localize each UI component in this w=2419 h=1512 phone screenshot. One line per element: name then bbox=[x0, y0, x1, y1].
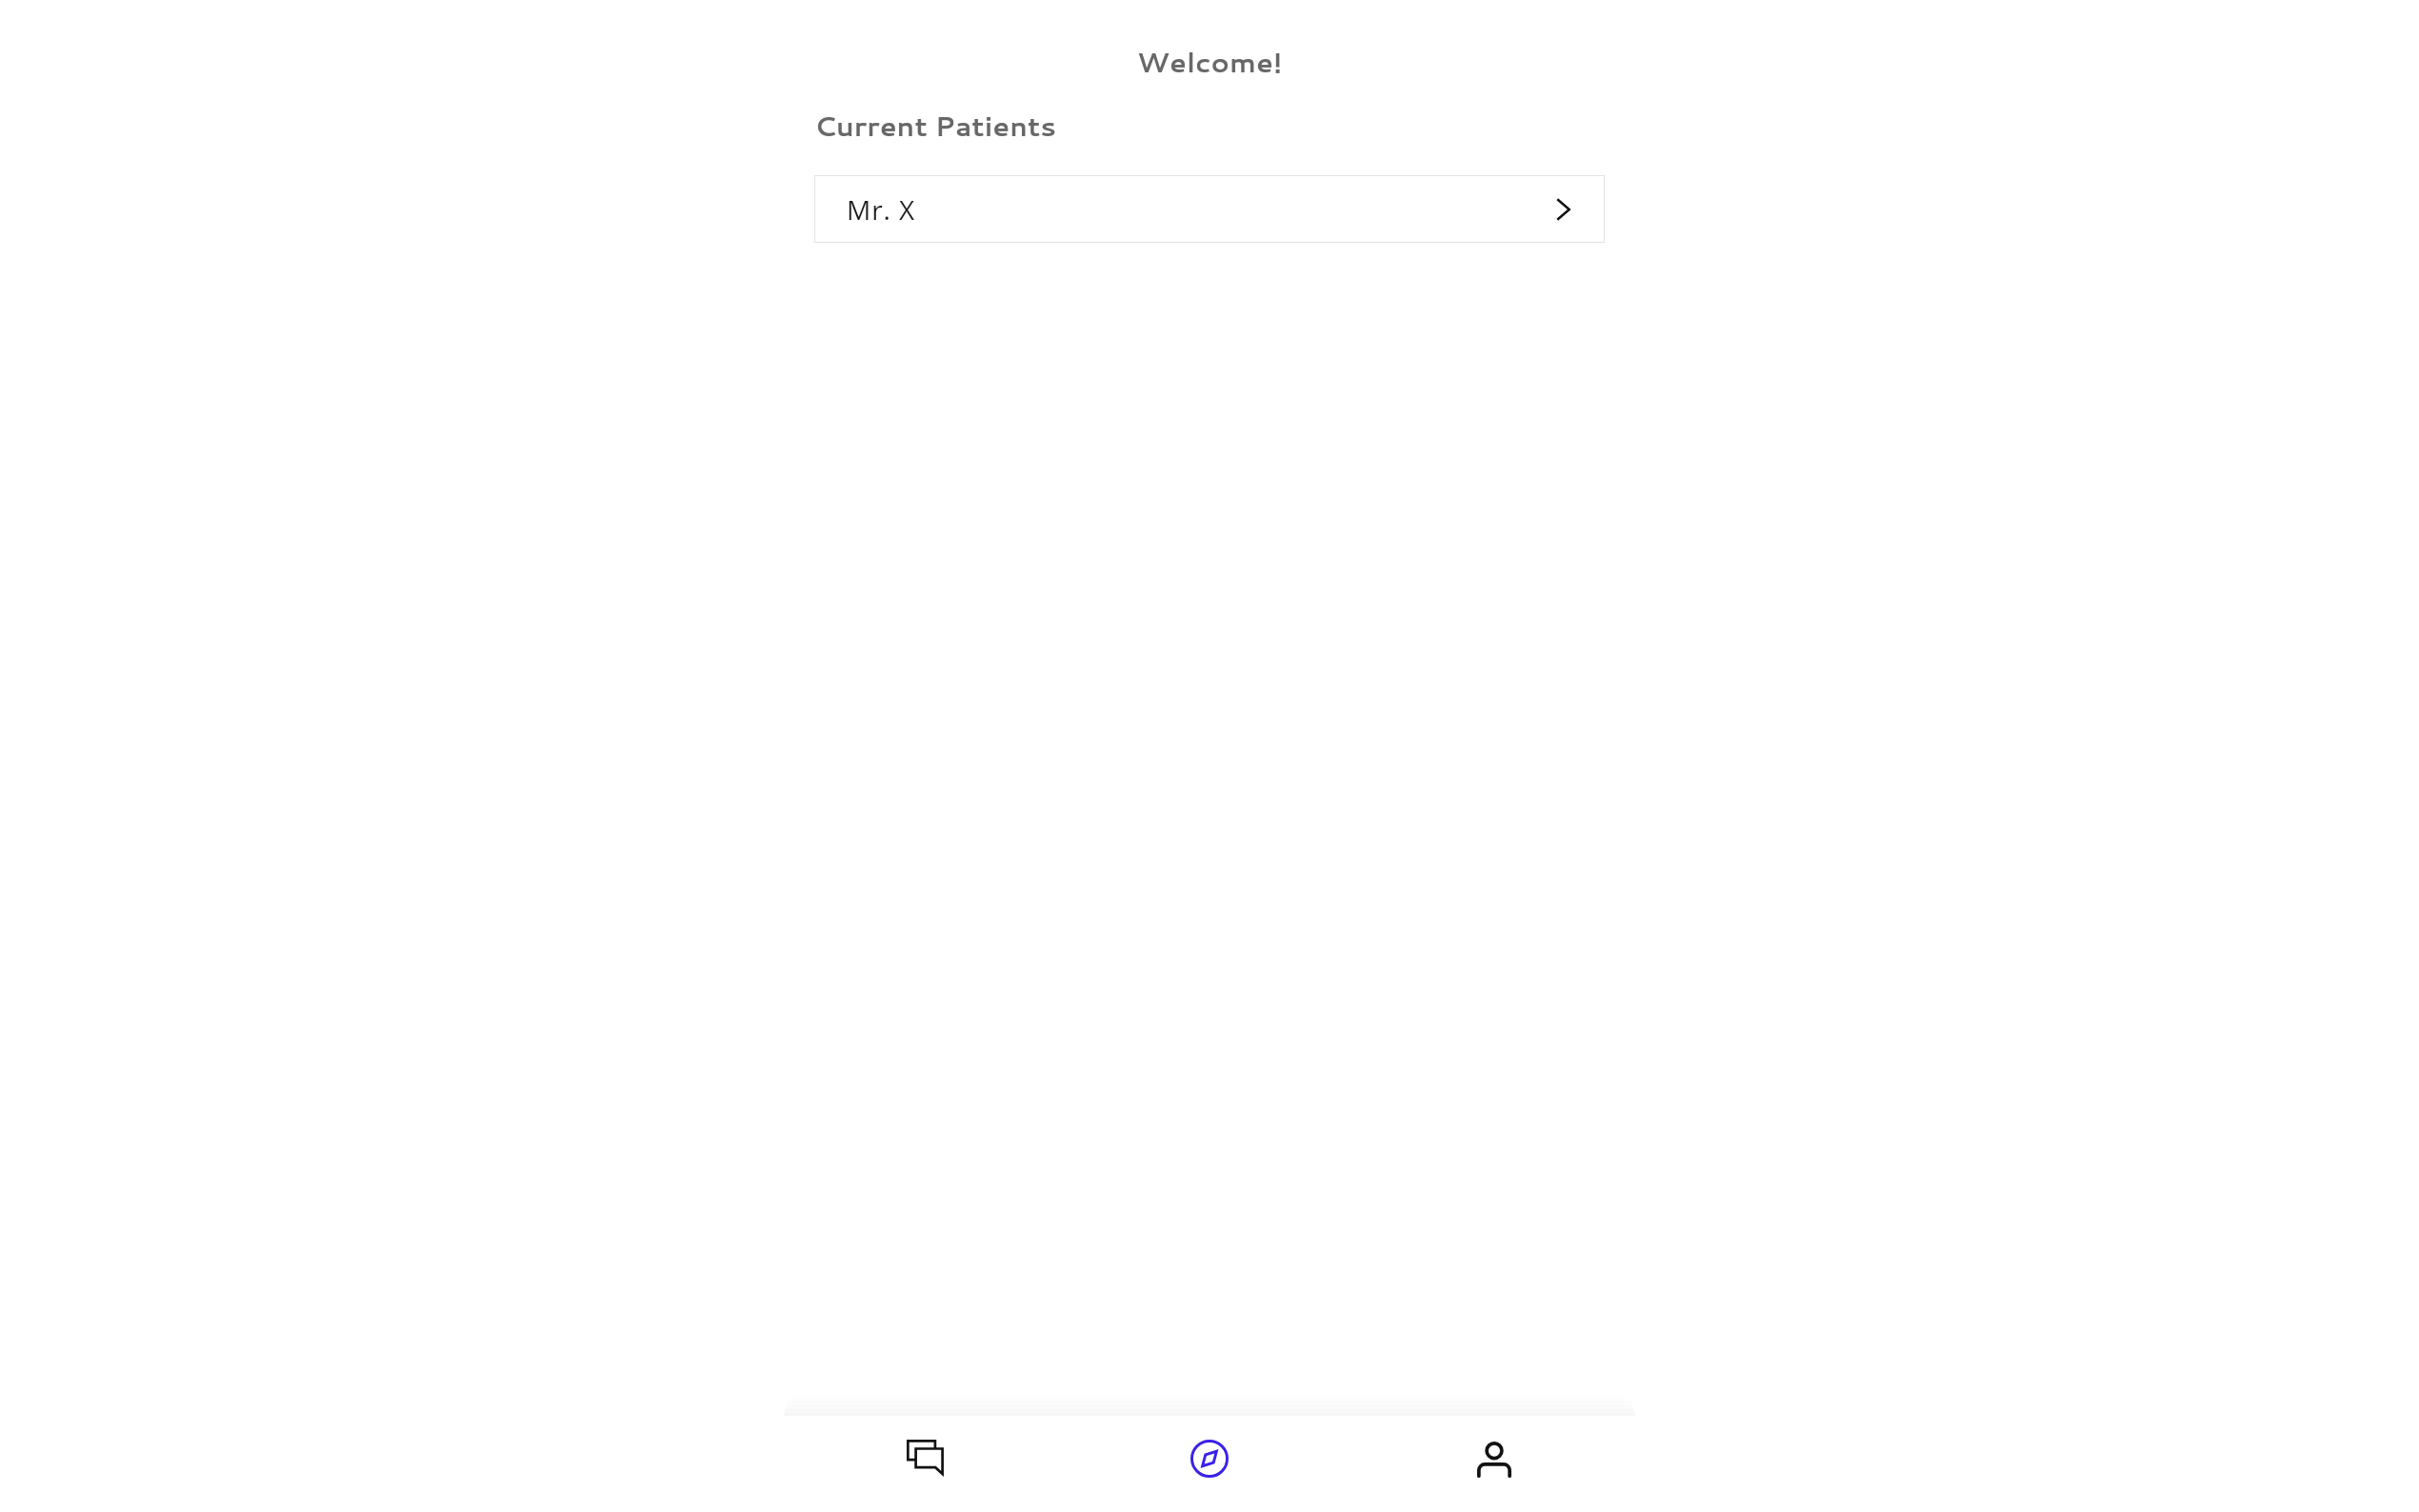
button[interactable]: Messages bbox=[783, 1416, 1067, 1512]
button[interactable]: Explore bbox=[1067, 1416, 1351, 1512]
staticText: Current Patients bbox=[814, 106, 1056, 145]
staticText: Welcome! bbox=[814, 42, 1605, 81]
staticText: Mr. X bbox=[847, 191, 916, 228]
button[interactable]: Profile bbox=[1351, 1416, 1636, 1512]
button[interactable]: Mr. X bbox=[814, 175, 1605, 243]
